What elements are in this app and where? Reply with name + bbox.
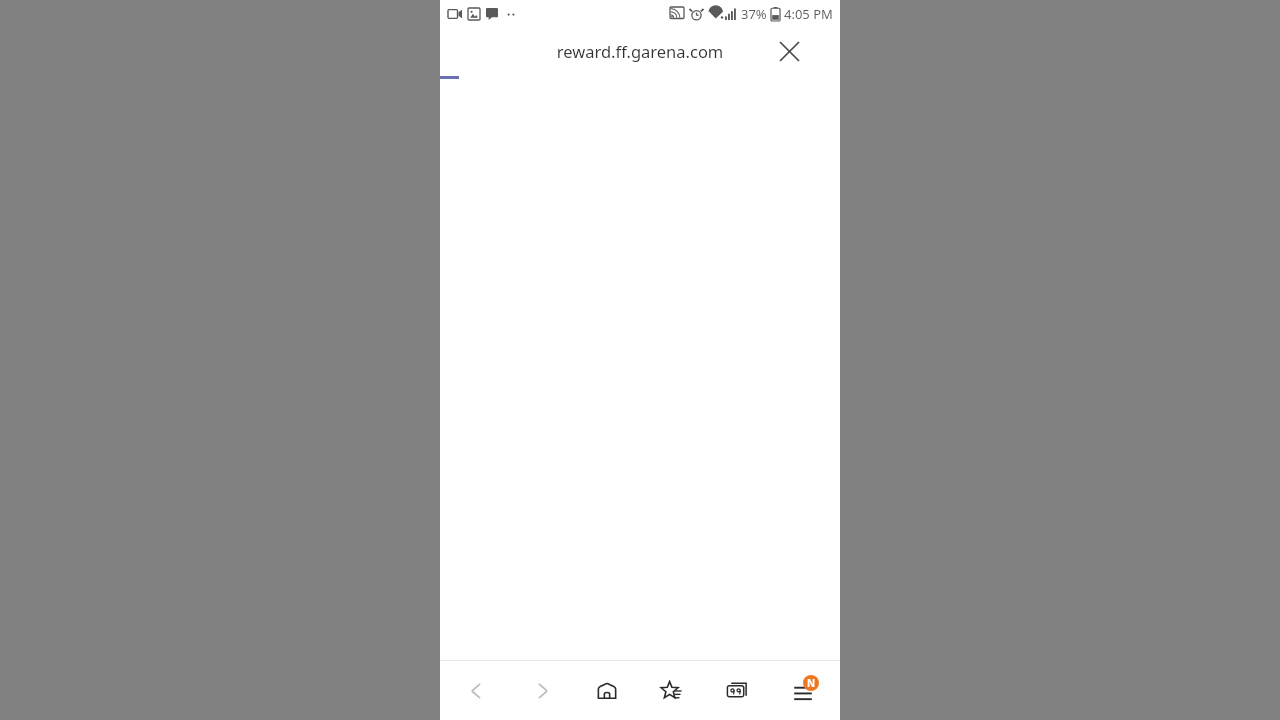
staticText: 37%	[741, 5, 767, 23]
button[interactable]: Tabs	[714, 668, 760, 714]
button[interactable]: Close	[772, 34, 806, 68]
staticText: N	[807, 676, 816, 690]
button[interactable]: Forward	[520, 668, 566, 714]
button[interactable]: Back	[453, 668, 499, 714]
staticText: reward.ff.garena.com	[440, 40, 840, 62]
button[interactable]: Home	[584, 668, 630, 714]
button[interactable]: Bookmarks	[649, 668, 695, 714]
button[interactable]: Menu	[780, 668, 826, 714]
staticText: 4:05 PM	[784, 5, 833, 23]
